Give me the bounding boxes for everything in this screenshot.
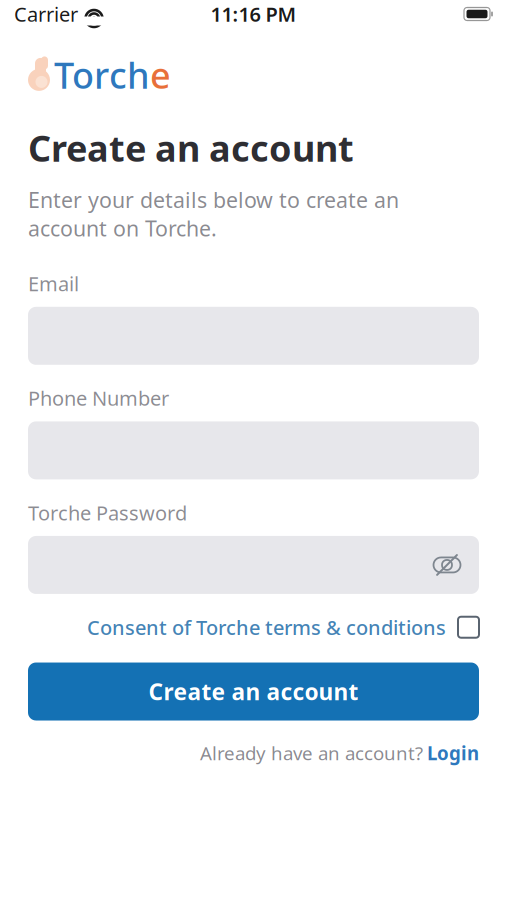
staticText: Create an account (148, 676, 358, 707)
button[interactable]: Show password (425, 543, 469, 587)
staticText: 11:16 PM (210, 1, 296, 27)
button[interactable]: Create an account (28, 662, 479, 720)
staticText: Carrier (14, 1, 78, 27)
staticText: Email (28, 270, 79, 297)
staticText: e (150, 51, 171, 99)
staticText: Torche Password (28, 499, 187, 526)
staticText: Torch (54, 51, 150, 99)
staticText: Create an account (28, 124, 354, 172)
button[interactable]: Consent of Torche terms & conditions (87, 608, 479, 647)
staticText: Consent of Torche terms & conditions (87, 614, 446, 641)
staticText: Already have an account? (200, 740, 423, 765)
staticText: Phone Number (28, 385, 169, 411)
button[interactable]: Already have an account? (200, 736, 479, 769)
staticText: Login (427, 740, 479, 765)
staticText: Enter your details below to create an ac… (28, 186, 399, 242)
